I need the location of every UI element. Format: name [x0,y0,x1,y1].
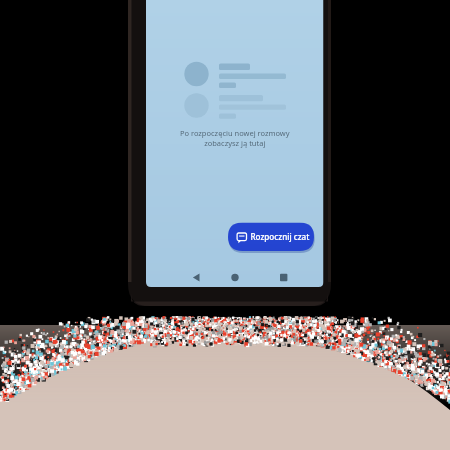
button[interactable]: Back [184,266,210,289]
button[interactable]: Home [222,266,248,289]
button[interactable]: Recent apps [271,266,297,289]
button[interactable]: Rozpocznij czat [228,222,314,251]
